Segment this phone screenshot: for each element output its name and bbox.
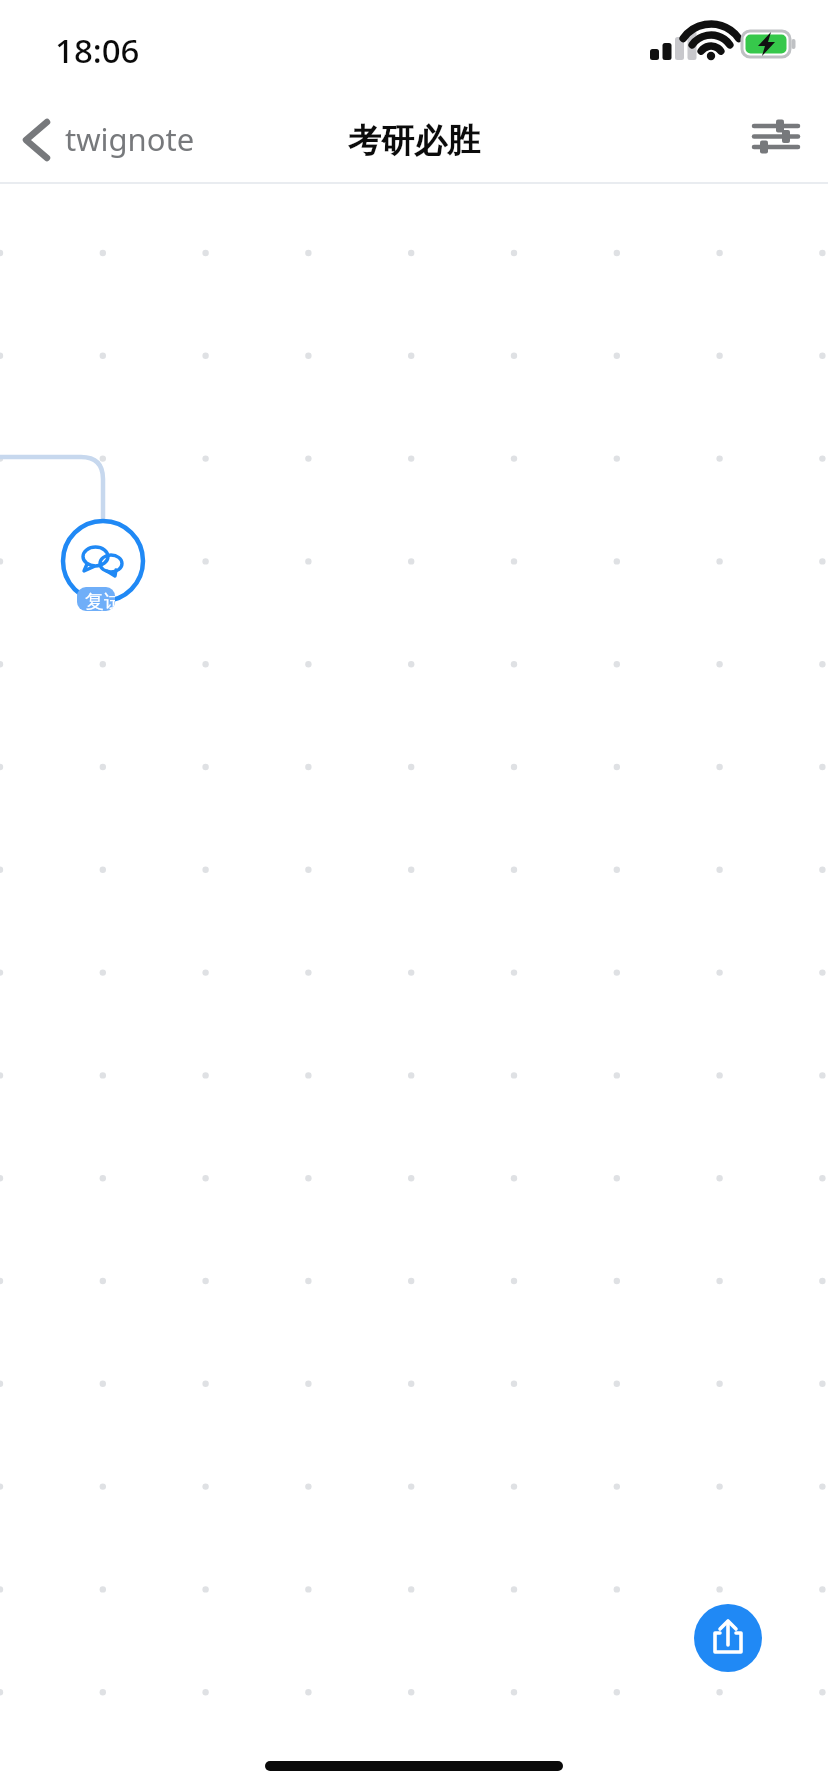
staticText: 考研必胜 bbox=[0, 120, 828, 162]
button[interactable]: Share bbox=[694, 1604, 762, 1672]
staticText: 18:06 bbox=[55, 28, 140, 73]
staticText: twignote bbox=[65, 118, 195, 160]
button[interactable]: Settings bbox=[740, 100, 812, 172]
staticText: 复试 bbox=[85, 590, 115, 611]
button[interactable]: twignote bbox=[10, 96, 200, 172]
button[interactable]: 复试 bbox=[58, 516, 148, 616]
